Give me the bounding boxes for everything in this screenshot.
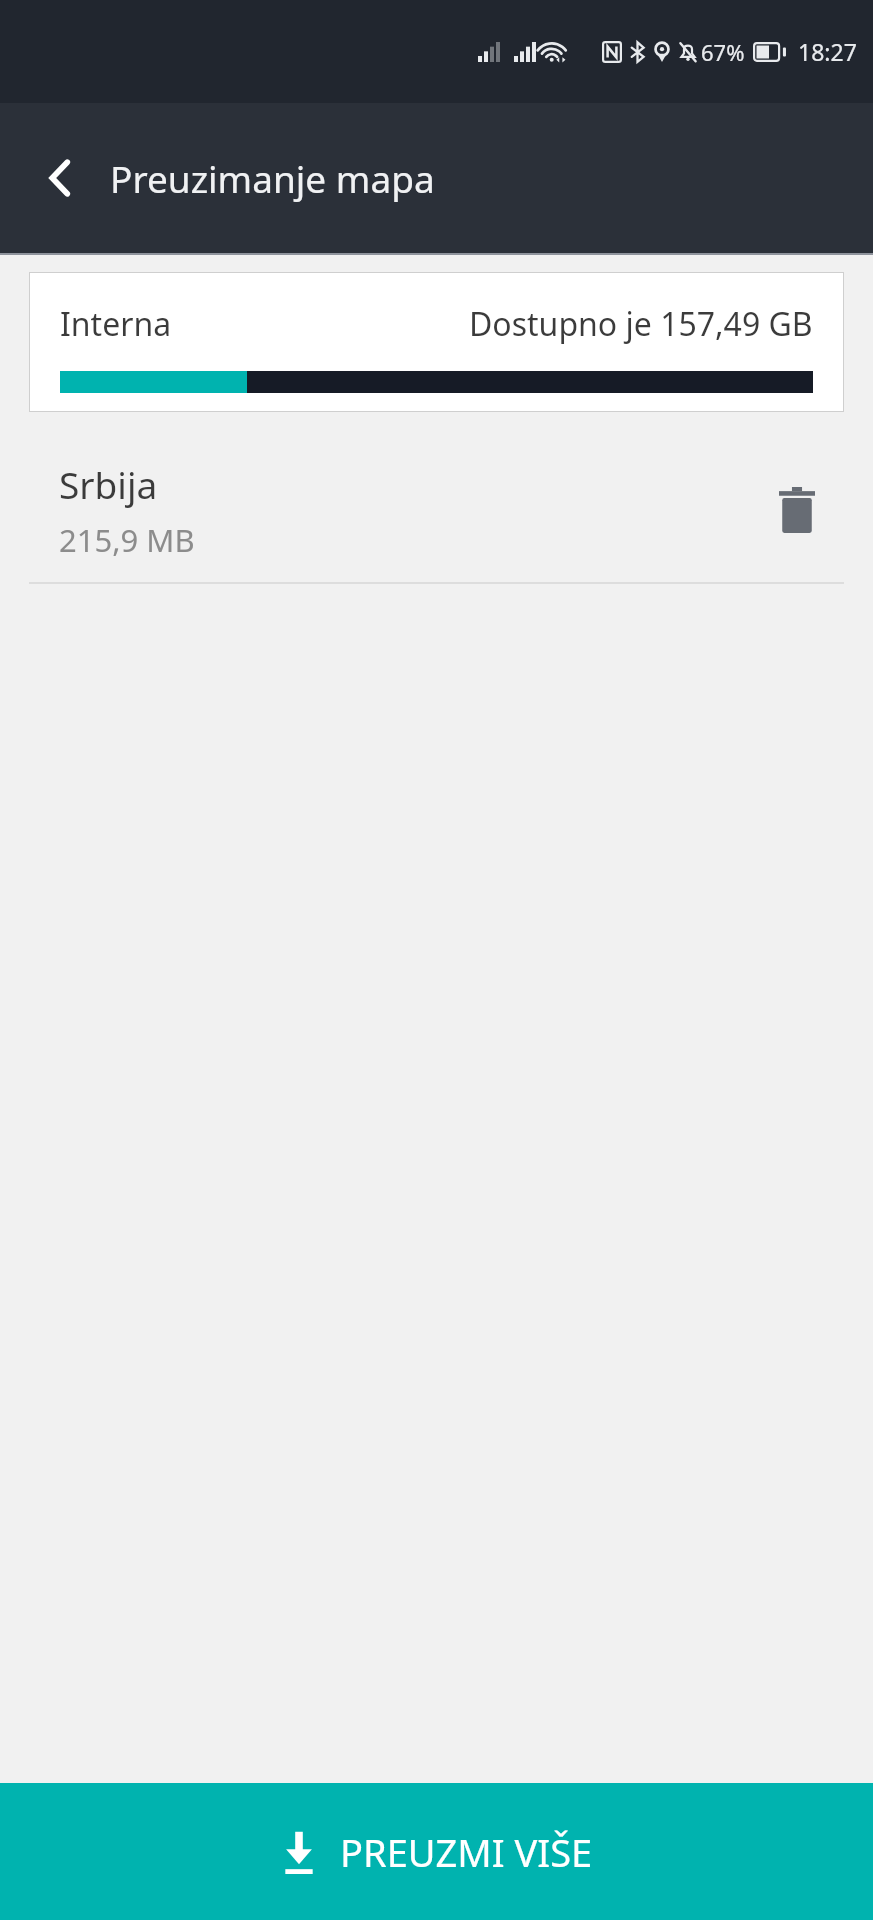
staticText: Srbija xyxy=(59,459,158,509)
staticText: Dostupno je 157,49 GB xyxy=(469,302,813,346)
button[interactable]: Srbija xyxy=(0,437,873,582)
button[interactable]: Back xyxy=(28,146,92,210)
staticText: Preuzimanje mapa xyxy=(110,153,435,203)
staticText: 215,9 MB xyxy=(59,519,195,561)
button[interactable]: Delete xyxy=(761,474,833,546)
staticText: PREUZMI VIŠE xyxy=(340,1826,593,1878)
button[interactable]: Interna xyxy=(30,273,843,411)
button[interactable]: PREUZMI VIŠE xyxy=(0,1783,873,1920)
staticText: 67% xyxy=(701,37,745,67)
staticText: 18:27 xyxy=(798,36,857,67)
staticText: Interna xyxy=(60,302,172,346)
